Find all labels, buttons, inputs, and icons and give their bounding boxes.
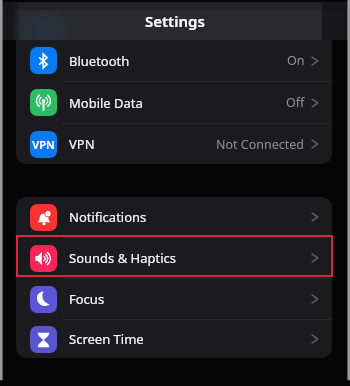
- staticText: Settings: [145, 11, 205, 31]
- staticText: Notifications: [69, 208, 147, 226]
- button[interactable]: Focus: [16, 279, 332, 319]
- staticText: Mobile Data: [69, 94, 143, 112]
- button[interactable]: Sounds & Haptics: [16, 238, 332, 278]
- staticText: Sounds & Haptics: [69, 249, 177, 267]
- staticText: Focus: [69, 290, 105, 308]
- staticText: Not Connected: [216, 136, 305, 153]
- button[interactable]: Mobile Data: [16, 82, 332, 123]
- button[interactable]: VPN: [16, 124, 332, 164]
- button[interactable]: Screen Time: [16, 320, 332, 358]
- button[interactable]: Bluetooth: [16, 40, 332, 81]
- staticText: Screen Time: [69, 330, 144, 348]
- staticText: Off: [286, 94, 305, 111]
- staticText: Bluetooth: [69, 52, 130, 70]
- staticText: VPN: [32, 137, 55, 152]
- button[interactable]: Notifications: [16, 197, 332, 237]
- staticText: VPN: [69, 135, 95, 153]
- staticText: On: [287, 52, 305, 69]
